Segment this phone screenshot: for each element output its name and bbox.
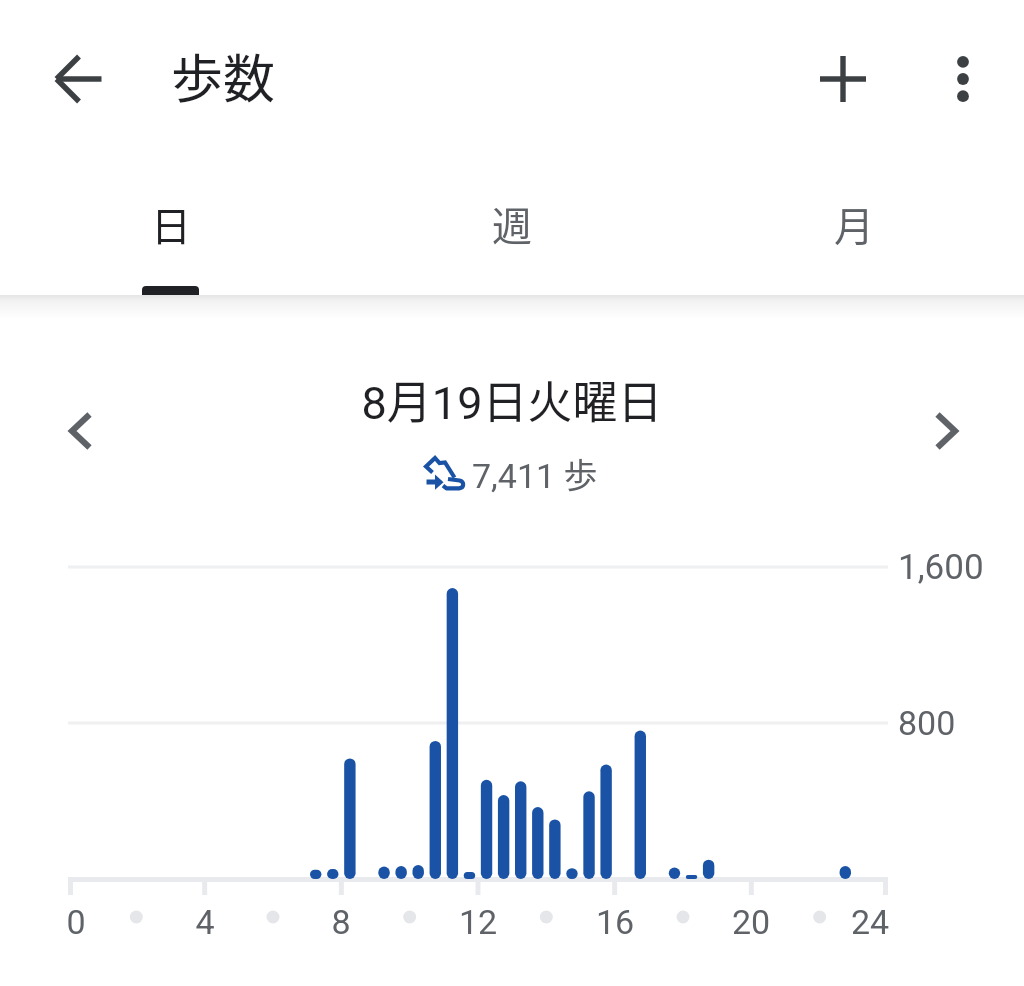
staticText: 24	[820, 902, 920, 942]
button[interactable]: 日	[0, 157, 341, 295]
button[interactable]: 月	[683, 157, 1024, 295]
staticText: 4	[155, 902, 255, 942]
staticText: 800	[898, 703, 956, 743]
staticText: 週	[492, 195, 532, 253]
button[interactable]: 週	[341, 157, 682, 295]
button[interactable]: Next day	[917, 402, 977, 462]
staticText: 8	[291, 902, 391, 942]
staticText: 日	[151, 195, 191, 253]
button[interactable]: Back	[45, 45, 113, 113]
staticText: 0	[26, 902, 126, 942]
staticText: 月	[834, 195, 874, 253]
button[interactable]: Add	[809, 45, 877, 113]
button[interactable]: Previous day	[50, 402, 110, 462]
staticText: 20	[701, 902, 801, 942]
staticText: 歩数	[171, 38, 276, 113]
button[interactable]: More options	[929, 45, 997, 113]
staticText: 16	[565, 902, 665, 942]
staticText: 1,600	[898, 547, 984, 588]
staticText: 12	[428, 902, 528, 942]
staticText: 8月19日火曜日	[0, 367, 1024, 432]
staticText: 7,411 歩	[472, 449, 598, 498]
